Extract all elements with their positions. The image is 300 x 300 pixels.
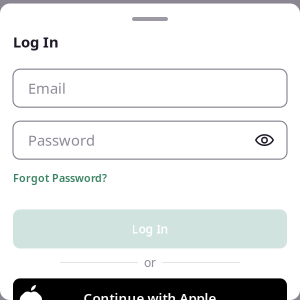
staticText: Log In bbox=[13, 32, 59, 52]
button[interactable]: Continue with Apple bbox=[13, 278, 287, 300]
staticText: or bbox=[144, 254, 156, 270]
button[interactable]: Show password bbox=[255, 133, 274, 147]
staticText: Continue with Apple bbox=[83, 289, 216, 300]
button[interactable]: Forgot Password? bbox=[13, 171, 107, 185]
button[interactable]: Email bbox=[13, 69, 287, 107]
staticText: Email bbox=[28, 78, 66, 98]
staticText: Log In bbox=[131, 221, 168, 237]
staticText: Password bbox=[28, 130, 95, 150]
button[interactable]: Password bbox=[13, 121, 287, 159]
staticText: Forgot Password? bbox=[13, 171, 107, 185]
button[interactable]: Log In bbox=[13, 209, 287, 248]
